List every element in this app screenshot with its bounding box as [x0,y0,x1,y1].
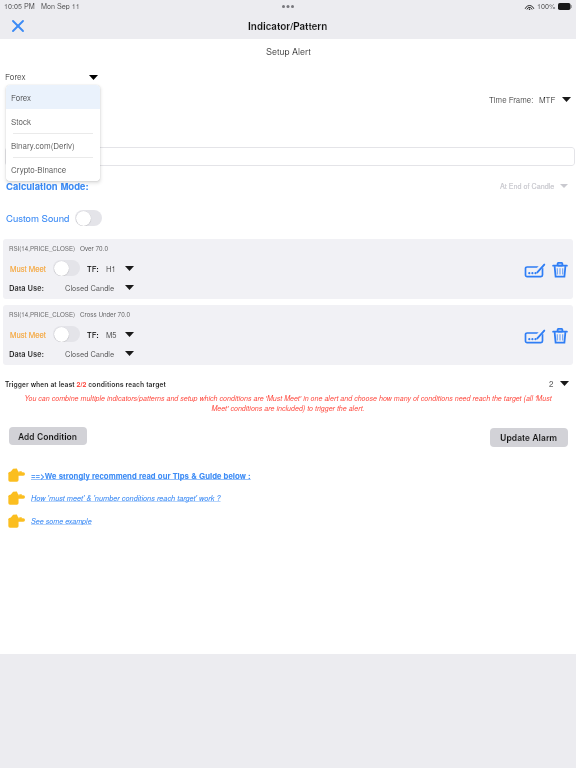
button[interactable]: Edit condition [522,260,548,280]
staticText: Custom Sound [6,211,70,225]
button[interactable]: Crypto-Binance [6,157,100,181]
button[interactable]: Time Frame: [489,94,571,105]
staticText: TF: [87,263,99,274]
staticText: Crypto-Binance [11,164,67,175]
staticText: Forex [5,71,26,83]
button[interactable]: At End of Candle [500,181,568,191]
button[interactable]: Delete condition [550,325,570,347]
staticText: Stock [11,116,31,127]
button[interactable]: Toggle [53,326,80,342]
button[interactable] [5,147,575,166]
button[interactable]: Binary.com(Deriv) [6,133,100,157]
staticText: Cross Under 70.0 [80,310,131,319]
staticText: Closed Candle [65,282,115,293]
staticText: Data Use: [9,348,45,359]
button[interactable]: Toggle [53,260,80,276]
button[interactable]: Update Alarm [490,428,568,447]
staticText: How 'must meet' & 'number conditions rea… [31,493,221,503]
staticText: You can combine multiple indicators/patt… [19,393,557,413]
staticText: Must Meet [10,263,46,274]
button[interactable]: ==>We strongly recommend read our Tips &… [0,468,576,482]
button[interactable]: Add Condition [9,427,87,445]
staticText: TF: [87,329,99,340]
staticText: Add Condition [18,430,78,442]
button[interactable]: Toggle [75,210,102,226]
staticText: Closed Candle [65,348,115,359]
staticText: Binary.com(Deriv) [11,140,75,151]
staticText: Over 70.0 [80,244,108,253]
staticText: 2 [549,378,554,389]
button[interactable]: Close [6,14,30,37]
button[interactable]: How 'must meet' & 'number conditions rea… [0,491,576,505]
button[interactable]: Edit condition [522,326,548,346]
staticText: M5 [106,329,117,340]
button[interactable]: Stock [6,109,100,133]
staticText: Indicator/Pattern [248,19,328,33]
staticText: Data Use: [9,282,45,293]
staticText: RSI(14,PRICE_CLOSE) [9,310,76,319]
staticText: Must Meet [10,329,46,340]
staticText: See some example [31,516,92,526]
staticText: H1 [106,263,116,274]
button[interactable]: Forex [6,85,100,109]
button[interactable]: 2 [549,378,569,389]
button[interactable]: See some example [0,514,576,528]
staticText: 100% [537,1,556,11]
staticText: Time Frame: [489,94,534,105]
staticText: Update Alarm [500,431,558,444]
staticText: Forex [11,92,32,103]
staticText: At End of Candle [500,181,555,191]
staticText: Calculation Mode: [6,179,89,193]
staticText: 10:05 PM [4,1,35,11]
button[interactable]: Forex [5,69,104,85]
staticText: ==>We strongly recommend read our Tips &… [31,470,251,481]
staticText: Setup Alert [266,45,311,58]
button[interactable]: Delete condition [550,259,570,281]
staticText: RSI(14,PRICE_CLOSE) [9,244,76,253]
staticText: Mon Sep 11 [41,1,80,11]
staticText: Trigger when at least 2/2 conditions rea… [5,379,166,389]
staticText: MTF [539,94,556,105]
